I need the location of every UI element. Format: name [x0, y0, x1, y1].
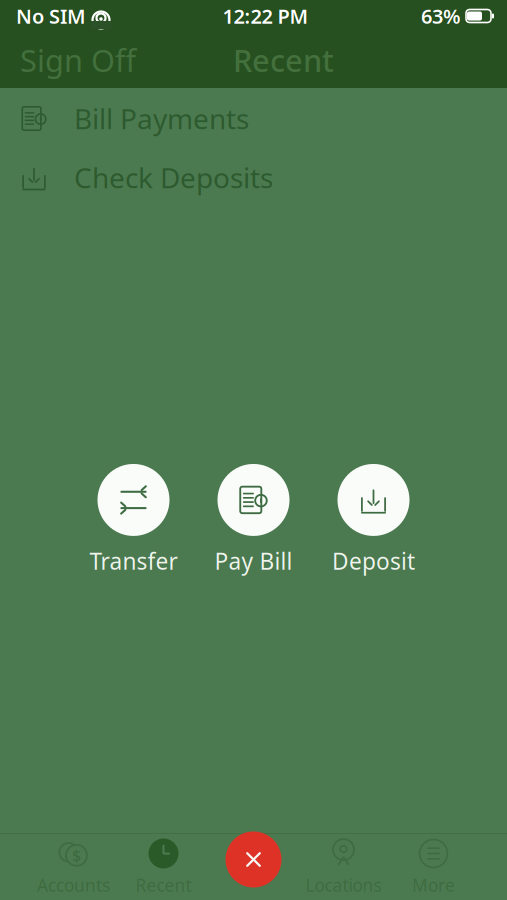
staticText: No SIM [16, 3, 86, 29]
staticText: Bill Payments [74, 100, 249, 137]
staticText: $ [72, 845, 81, 866]
button[interactable]: Deposit [313, 464, 433, 576]
staticText: Locations [305, 873, 381, 896]
button[interactable]: Locations [298, 837, 388, 897]
button[interactable]: Bill Payments [0, 89, 507, 148]
button[interactable]: Close menu [220, 826, 286, 892]
staticText: Recent [135, 873, 191, 896]
staticText: 12:22 PM [222, 3, 308, 29]
staticText: Recent [233, 40, 334, 80]
staticText: More [412, 873, 455, 896]
button[interactable]: Recent [118, 837, 208, 897]
button[interactable]: $ [28, 837, 118, 897]
button[interactable]: More [388, 837, 478, 897]
staticText: Pay Bill [214, 546, 292, 576]
staticText: Transfer [89, 546, 177, 576]
button[interactable]: Pay Bill [193, 464, 313, 576]
button[interactable]: Sign Off [0, 32, 156, 88]
staticText: 63% [421, 3, 461, 29]
staticText: Accounts [37, 873, 110, 896]
button[interactable]: Transfer [73, 464, 193, 576]
staticText: Sign Off [20, 40, 136, 80]
staticText: Check Deposits [74, 159, 273, 196]
staticText: Deposit [332, 546, 415, 576]
button[interactable]: Check Deposits [0, 148, 507, 207]
